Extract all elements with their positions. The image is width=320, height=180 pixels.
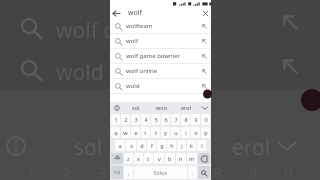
staticText: ı — [185, 129, 187, 136]
button[interactable]: woo — [149, 102, 174, 113]
staticText: 2 — [62, 162, 71, 180]
button[interactable]: x — [134, 153, 143, 164]
button[interactable]: o — [191, 127, 200, 138]
staticText: w — [123, 129, 128, 136]
button[interactable]: z — [124, 153, 133, 164]
staticText: erol — [181, 104, 192, 111]
button[interactable]: t — [151, 127, 160, 138]
staticText: woo — [156, 104, 167, 111]
button[interactable]: wolfteam — [110, 19, 211, 33]
button[interactable]: 7 — [171, 114, 180, 125]
button[interactable]: Shift — [111, 153, 123, 164]
staticText: m — [189, 155, 195, 162]
button[interactable]: Clear — [199, 7, 211, 19]
staticText: Türkçe — [153, 170, 168, 176]
button[interactable]: s — [126, 140, 136, 151]
staticText: 9 — [194, 116, 198, 123]
staticText: ?12 — [114, 170, 121, 175]
staticText: 5 — [154, 116, 158, 123]
staticText: c — [147, 155, 150, 162]
button[interactable]: 9 — [191, 114, 200, 125]
staticText: 0 — [204, 116, 208, 123]
button[interactable]: l — [197, 140, 206, 151]
staticText: 3 — [134, 116, 138, 123]
staticText: t — [155, 129, 157, 136]
button[interactable]: h — [167, 140, 176, 151]
staticText: j — [181, 142, 183, 149]
staticText: g — [160, 142, 164, 149]
staticText: wolf online — [56, 16, 165, 45]
button[interactable]: f — [147, 140, 156, 151]
button[interactable]: erol — [174, 102, 199, 113]
button[interactable]: w — [121, 127, 130, 138]
staticText: , — [128, 169, 130, 176]
staticText: wolf — [126, 37, 197, 45]
button[interactable]: Back — [110, 7, 122, 19]
staticText: e — [134, 129, 138, 136]
staticText: wolf — [128, 8, 142, 18]
button[interactable]: sol — [123, 102, 149, 113]
staticText: a — [118, 142, 122, 149]
staticText: erol — [232, 133, 271, 162]
staticText: 1 — [114, 116, 118, 123]
button[interactable]: r — [141, 127, 150, 138]
button[interactable]: ı — [181, 127, 190, 138]
button[interactable]: n — [176, 153, 186, 164]
button[interactable]: 0 — [201, 114, 210, 125]
button[interactable]: c — [144, 153, 153, 164]
button[interactable]: Türkçe — [134, 166, 187, 179]
button[interactable]: 8 — [181, 114, 190, 125]
button[interactable]: k — [187, 140, 196, 151]
staticText: f — [151, 142, 153, 149]
button[interactable]: , — [124, 166, 133, 179]
button[interactable]: g — [157, 140, 166, 151]
staticText: l — [201, 142, 203, 149]
staticText: wolf game bownler — [126, 52, 197, 60]
button[interactable]: ?12 — [111, 166, 123, 179]
staticText: v — [158, 155, 161, 162]
button[interactable]: d — [137, 140, 146, 151]
button[interactable]: m — [187, 153, 197, 164]
button[interactable]: a — [115, 140, 125, 151]
button[interactable]: 2 — [121, 114, 130, 125]
button[interactable]: 3 — [131, 114, 140, 125]
staticText: wolfteam — [126, 22, 197, 30]
staticText: n — [179, 155, 183, 162]
staticText: 7 — [174, 116, 178, 123]
staticText: wolf online — [126, 67, 197, 75]
button[interactable]: q — [111, 127, 120, 138]
button[interactable]: wolf — [110, 34, 211, 48]
staticText: h — [170, 142, 174, 149]
button[interactable]: p — [201, 127, 210, 138]
staticText: x — [137, 155, 140, 162]
button[interactable]: u — [171, 127, 180, 138]
staticText: r — [144, 129, 147, 136]
button[interactable]: b — [165, 153, 175, 164]
button[interactable]: v — [154, 153, 164, 164]
button[interactable]: More suggestions — [199, 102, 211, 113]
staticText: sol — [132, 104, 140, 111]
button[interactable]: 4 — [141, 114, 150, 125]
button[interactable]: y — [161, 127, 170, 138]
staticText: z — [127, 155, 130, 162]
button[interactable]: Search — [198, 166, 210, 179]
button[interactable]: 1 — [111, 114, 120, 125]
staticText: 8 — [184, 116, 188, 123]
button[interactable]: wolf game bownler — [110, 49, 211, 63]
button[interactable]: Backspace — [198, 153, 210, 164]
button[interactable]: 5 — [151, 114, 160, 125]
staticText: d — [140, 142, 144, 149]
button[interactable]: wolf online — [110, 64, 211, 78]
staticText: . — [192, 169, 194, 176]
staticText: 6 — [164, 116, 168, 123]
button[interactable]: wolf — [122, 7, 199, 19]
button[interactable]: Voice — [110, 102, 123, 113]
staticText: 9 — [249, 162, 258, 180]
button[interactable]: wold — [110, 79, 211, 93]
button[interactable]: . — [188, 166, 197, 179]
button[interactable]: 6 — [161, 114, 170, 125]
button[interactable]: j — [177, 140, 186, 151]
button[interactable]: e — [131, 127, 140, 138]
staticText: u — [174, 129, 178, 136]
